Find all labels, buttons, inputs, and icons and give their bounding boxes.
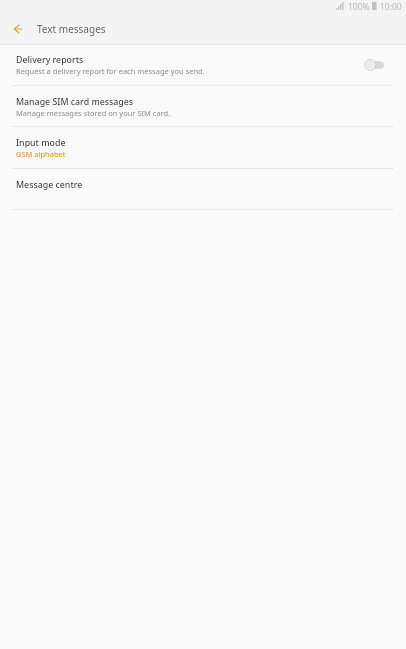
button[interactable]: Delivery reports (0, 45, 406, 85)
button[interactable]: Message centre (0, 169, 406, 209)
button[interactable]: Manage SIM card messages (0, 86, 406, 126)
staticText: Input mode (16, 137, 66, 149)
staticText: Delivery reports (16, 54, 84, 66)
staticText: Manage SIM card messages (16, 96, 134, 108)
staticText: 10:00 (380, 1, 402, 13)
button[interactable]: Delivery reports toggle (360, 53, 384, 77)
staticText: Manage messages stored on your SIM card. (16, 108, 171, 118)
staticText: Text messages (37, 22, 106, 36)
button[interactable]: Navigate up (0, 13, 36, 44)
button[interactable]: Input mode (0, 127, 406, 168)
staticText: Message centre (16, 179, 83, 191)
staticText: Request a delivery report for each messa… (16, 66, 205, 76)
staticText: 100% (348, 1, 370, 13)
staticText: GSM alphabet (16, 149, 66, 159)
